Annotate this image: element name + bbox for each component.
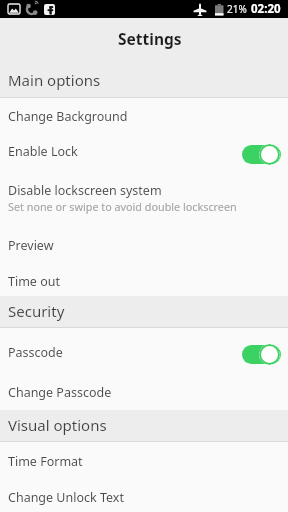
staticText: Settings: [118, 28, 182, 49]
staticText: Main options: [8, 70, 101, 90]
staticText: Disable lockscreen system: [8, 182, 162, 199]
staticText: Time Format: [8, 453, 83, 470]
button[interactable]: Time Format: [0, 446, 288, 476]
button[interactable]: Time out: [0, 266, 288, 296]
staticText: Change Unlock Text: [8, 489, 124, 506]
staticText: Time out: [8, 273, 60, 290]
staticText: Visual options: [8, 415, 107, 435]
staticText: Enable Lock: [8, 143, 78, 160]
staticText: Passcode: [8, 344, 63, 361]
staticText: 21%: [227, 2, 247, 16]
staticText: Change Passcode: [8, 384, 112, 401]
button[interactable]: Disable lockscreen system: [0, 178, 288, 222]
staticText: Change Background: [8, 108, 128, 125]
staticText: Security: [8, 301, 65, 321]
staticText: 02:20: [251, 1, 281, 17]
button[interactable]: [241, 343, 281, 365]
button[interactable]: Change Unlock Text: [0, 482, 288, 512]
staticText: Set none or swipe to avoid double locksc…: [8, 199, 237, 214]
button[interactable]: Enable Lock: [0, 136, 288, 166]
button[interactable]: Passcode: [0, 337, 288, 367]
button[interactable]: Preview: [0, 230, 288, 260]
staticText: Preview: [8, 237, 54, 254]
button[interactable]: Change Background: [0, 101, 288, 131]
button[interactable]: [241, 143, 281, 165]
button[interactable]: Change Passcode: [0, 377, 288, 407]
